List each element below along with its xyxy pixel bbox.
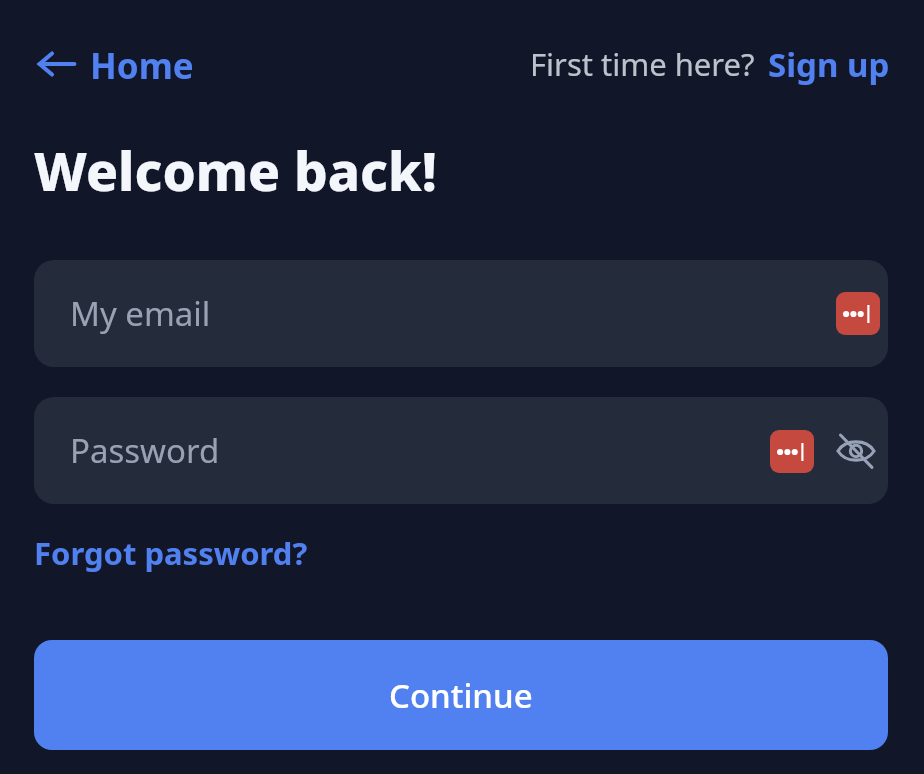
button[interactable]: Sign up (768, 42, 890, 87)
button[interactable]: My email (34, 260, 888, 367)
other: Back (36, 47, 76, 81)
staticText: My email (70, 291, 211, 336)
button[interactable]: Show password (832, 427, 880, 475)
staticText: Welcome back! (34, 134, 438, 206)
staticText: First time here? (530, 43, 755, 85)
button[interactable]: Back (30, 38, 200, 90)
staticText: Sign up (768, 42, 890, 87)
button[interactable]: Autofill (770, 430, 814, 473)
staticText: Password (70, 428, 220, 473)
staticText: Forgot password? (34, 532, 308, 574)
button[interactable]: Autofill (836, 292, 880, 335)
button[interactable]: Forgot password? (34, 526, 308, 580)
staticText: Home (90, 42, 194, 86)
button[interactable]: Continue (34, 640, 888, 750)
staticText: Continue (389, 673, 533, 718)
button[interactable]: Password (34, 397, 888, 504)
